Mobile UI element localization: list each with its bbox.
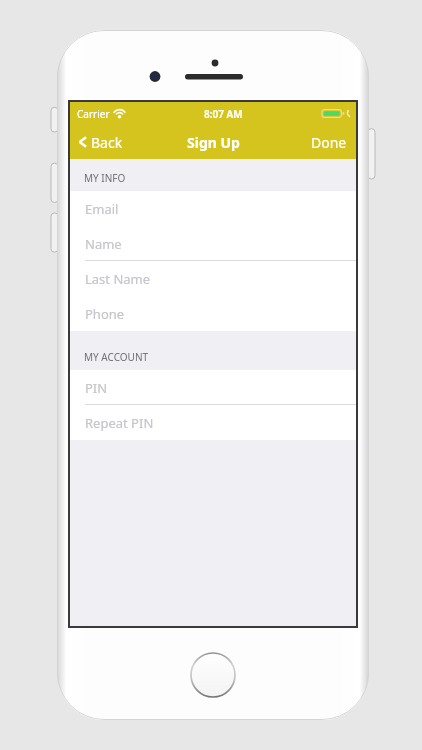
staticText: Phone <box>85 305 125 323</box>
staticText: Repeat PIN <box>85 414 154 432</box>
button[interactable]: Email <box>70 191 356 226</box>
staticText: Email <box>85 200 119 218</box>
staticText: PIN <box>85 379 108 397</box>
button[interactable]: Back <box>70 125 135 159</box>
button[interactable]: Home <box>189 651 237 699</box>
staticText: MY ACCOUNT <box>84 350 149 364</box>
staticText: Sign Up <box>187 133 240 152</box>
staticText: Done <box>311 133 347 152</box>
staticText: MY INFO <box>84 171 126 185</box>
staticText: Name <box>85 235 122 253</box>
staticText: Back <box>91 133 123 152</box>
staticText: 8:07 AM <box>204 107 243 121</box>
button[interactable]: Done <box>302 125 356 159</box>
button[interactable]: Last Name <box>70 261 356 296</box>
staticText: Carrier <box>77 107 110 121</box>
staticText: Last Name <box>85 270 151 288</box>
button[interactable]: Repeat PIN <box>70 405 356 440</box>
button[interactable]: Phone <box>70 296 356 331</box>
button[interactable]: Name <box>70 226 356 261</box>
button[interactable]: PIN <box>70 370 356 405</box>
